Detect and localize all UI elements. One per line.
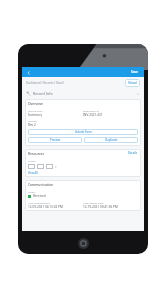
- button[interactable]: Submit Form: [28, 129, 138, 135]
- button[interactable]: [37, 164, 44, 169]
- staticText: Status: [28, 190, 36, 193]
- staticText: INV-2021-431: [83, 113, 103, 117]
- staticText: Communication: [28, 182, 54, 186]
- button[interactable]: Back: [25, 69, 32, 76]
- staticText: Resources: [28, 151, 45, 155]
- staticText: Preview: [50, 138, 61, 142]
- staticText: Submit Form: [75, 130, 92, 134]
- staticText: Received: [33, 194, 46, 198]
- button[interactable]: View All: [28, 171, 38, 175]
- staticText: 12-09-2021 04:13:02 PM: [28, 205, 63, 209]
- staticText: 12-19-2021 09:41:56 PM: [83, 205, 118, 209]
- staticText: Assets: [28, 159, 36, 162]
- button[interactable]: Reload: [125, 79, 140, 87]
- button[interactable]: [46, 164, 53, 169]
- staticText: Overview: [28, 101, 43, 105]
- staticText: Rev 2: [28, 123, 36, 127]
- staticText: Duplicate: [105, 138, 118, 142]
- button[interactable]: Home: [78, 238, 89, 249]
- staticText: Record Type: [28, 109, 43, 112]
- staticText: Record Info: [33, 91, 53, 96]
- staticText: Last Updated Date: [28, 201, 50, 204]
- staticText: Save: [131, 70, 139, 74]
- staticText: Next Review Date: [83, 201, 104, 204]
- button[interactable]: Preview: [28, 137, 82, 143]
- button[interactable]: Record Info: [22, 88, 144, 99]
- staticText: Details: [128, 151, 137, 155]
- staticText: Version: [28, 119, 37, 122]
- staticText: View All: [28, 171, 38, 175]
- button[interactable]: [28, 164, 35, 169]
- staticText: Reload: [128, 81, 137, 85]
- staticText: >: [55, 165, 57, 169]
- staticText: Inventory: [28, 113, 43, 117]
- staticText: Dashboard / Records / Detail: [26, 81, 64, 85]
- button[interactable]: Duplicate: [84, 137, 138, 143]
- button[interactable]: Details: [127, 150, 138, 156]
- button[interactable]: Save: [129, 69, 141, 75]
- staticText: Reference No: [83, 109, 99, 112]
